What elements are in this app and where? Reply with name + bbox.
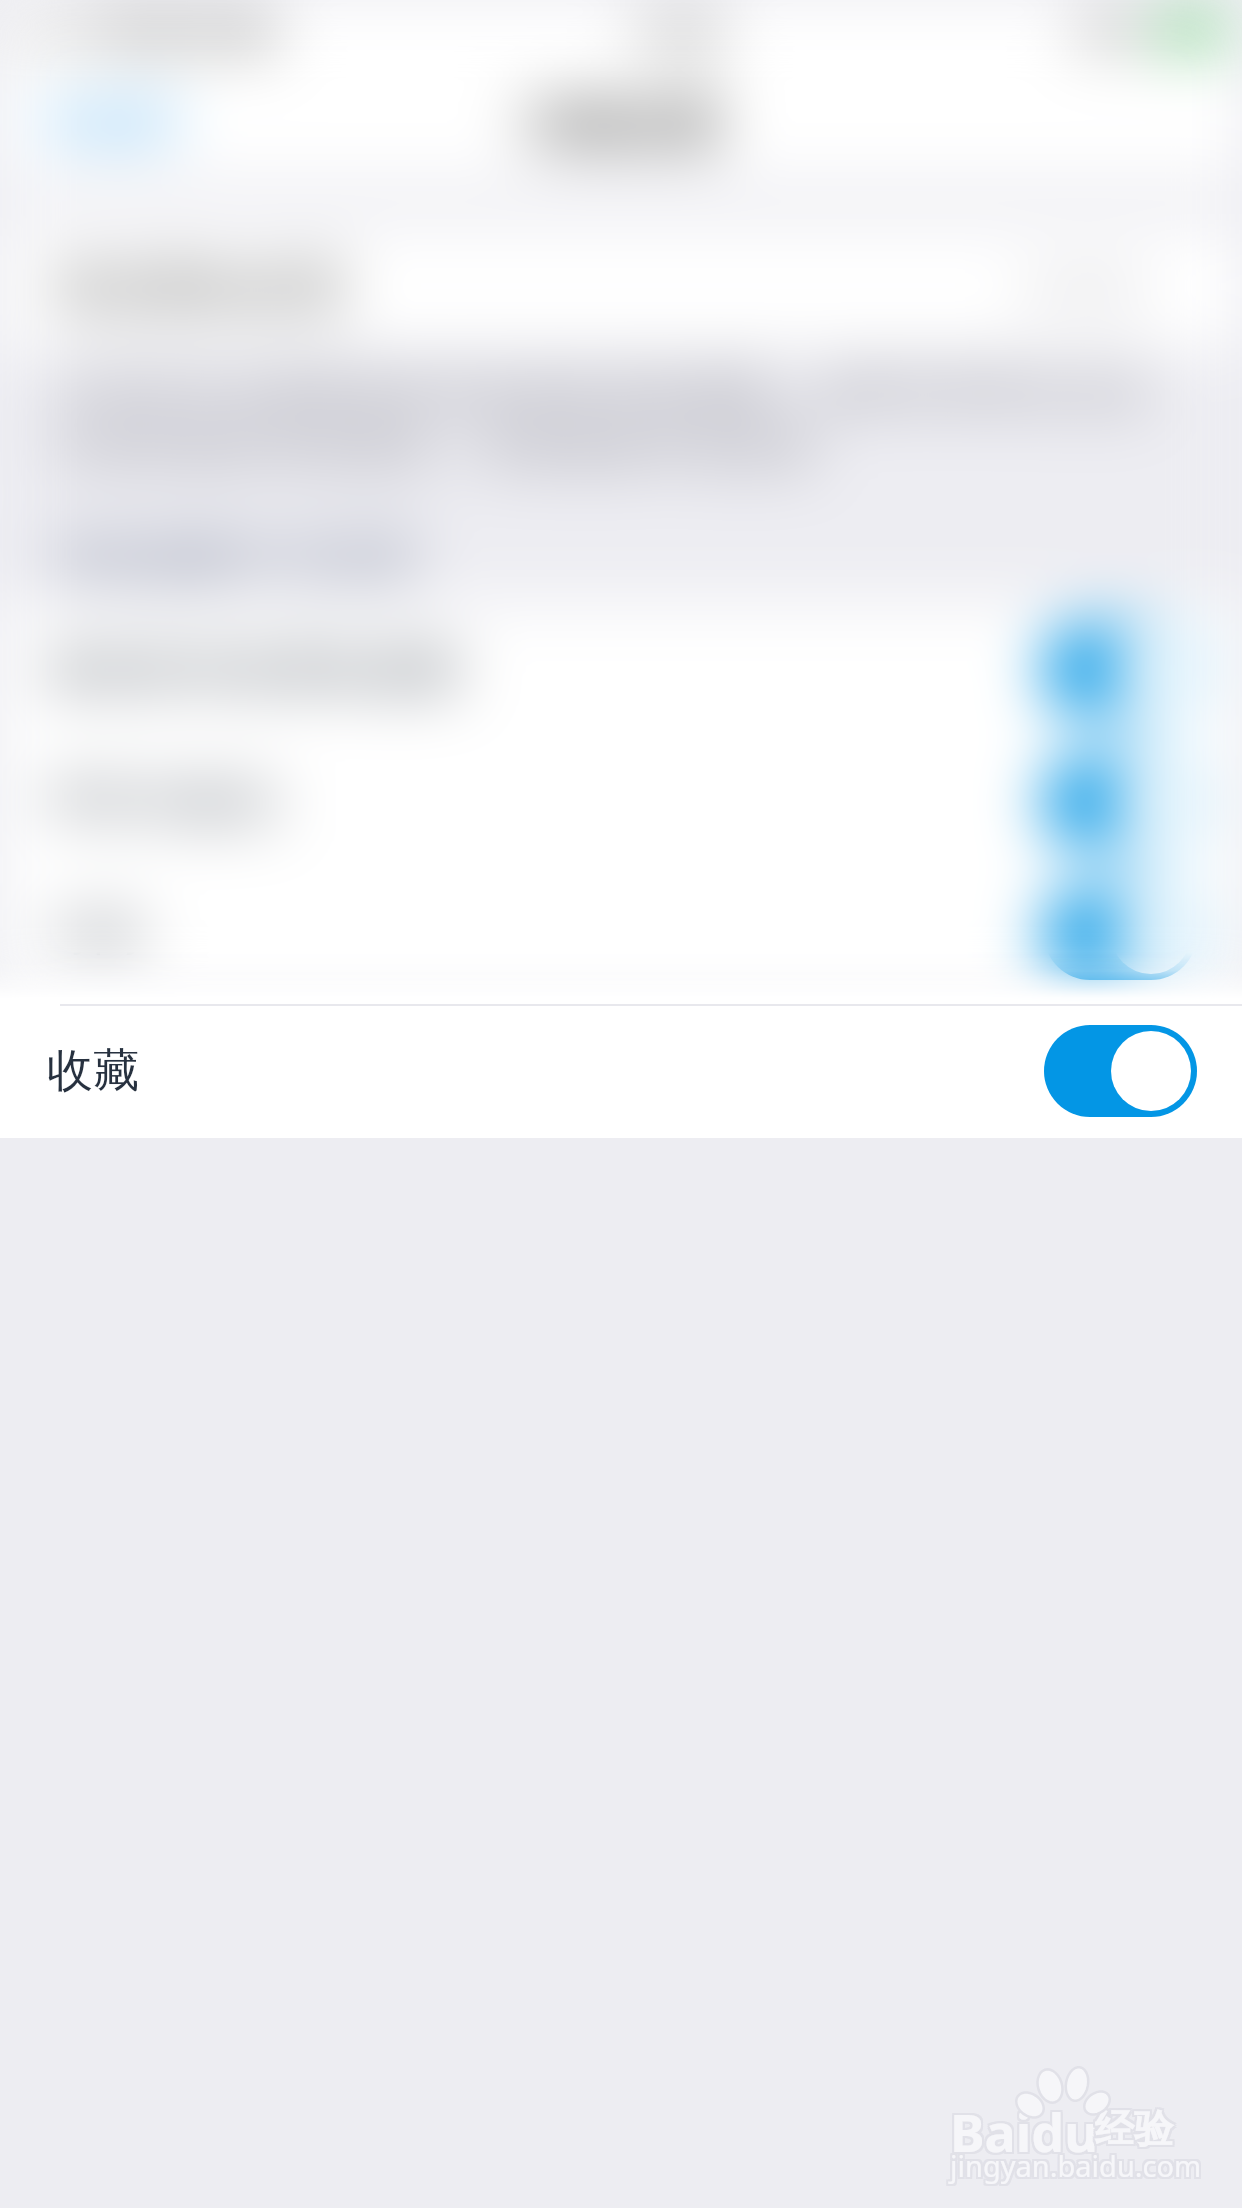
- staticText: 经验: [1093, 2104, 1171, 2153]
- button[interactable]: 收藏 switch, on: [1044, 1025, 1197, 1117]
- staticText: Baidu: [950, 2096, 1098, 2167]
- staticText: jingyan.baidu.com: [948, 2144, 1200, 2183]
- staticText: 功能设置: [521, 94, 721, 157]
- staticText: 经验: [1097, 2102, 1175, 2151]
- staticText: Baidu: [948, 2094, 1096, 2165]
- staticText: 84%: [1078, 8, 1146, 54]
- staticText: 经验: [1093, 2102, 1171, 2151]
- staticText: 消息提醒方式设置: [50, 530, 418, 588]
- staticText: 经验: [1097, 2104, 1175, 2153]
- staticText: Baidu: [952, 2098, 1100, 2169]
- staticText: 经验: [1097, 2106, 1175, 2155]
- staticText: 开启后可以接收到好友发来的消息提醒，如果关闭将无法及时收到新的消息通知，请谨慎操…: [58, 364, 1186, 475]
- staticText: jingyan.baidu.com: [952, 2146, 1204, 2185]
- staticText: jingyan.baidu.com: [952, 2148, 1204, 2187]
- button[interactable]: 收藏: [0, 1004, 1242, 1138]
- staticText: 中国联通: [76, 9, 220, 54]
- staticText: Baidu: [950, 2098, 1098, 2169]
- staticText: 收藏: [47, 1042, 139, 1100]
- staticText: jingyan.baidu.com: [948, 2148, 1200, 2187]
- staticText: 4G: [228, 7, 275, 56]
- staticText: 经验: [1095, 2104, 1173, 2153]
- staticText: Baidu: [948, 2098, 1096, 2169]
- staticText: jingyan.baidu.com: [950, 2148, 1202, 2187]
- staticText: 经验: [1095, 2102, 1173, 2151]
- staticText: 经验: [1095, 2106, 1173, 2155]
- staticText: jingyan.baidu.com: [948, 2146, 1200, 2185]
- staticText: Baidu: [948, 2096, 1096, 2167]
- staticText: Baidu: [950, 2094, 1098, 2165]
- staticText: jingyan.baidu.com: [950, 2146, 1202, 2185]
- staticText: 订阅: [47, 905, 139, 963]
- staticText: jingyan.baidu.com: [952, 2144, 1204, 2183]
- staticText: 消息通知设置: [47, 257, 347, 320]
- staticText: Baidu: [952, 2094, 1100, 2165]
- staticText: Baidu: [952, 2096, 1100, 2167]
- staticText: 经验: [1093, 2106, 1171, 2155]
- staticText: 声音与振动: [47, 773, 277, 831]
- staticText: jingyan.baidu.com: [950, 2144, 1202, 2183]
- staticText: 返回: [84, 92, 180, 152]
- staticText: 接收新消息通知提醒: [47, 641, 461, 699]
